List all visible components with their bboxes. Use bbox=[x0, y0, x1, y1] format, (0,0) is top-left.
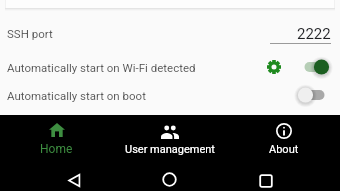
staticText: Home bbox=[40, 142, 73, 156]
button[interactable]: Recent apps bbox=[259, 174, 273, 188]
button[interactable]: About bbox=[227, 115, 340, 160]
staticText: Automatically start on boot bbox=[7, 89, 146, 102]
button[interactable]: Automatically start on boot bbox=[0, 81, 340, 109]
button[interactable]: Back bbox=[68, 174, 81, 187]
button[interactable]: Home bbox=[162, 172, 177, 187]
button[interactable]: Automatically start on Wi-Fi detected bbox=[0, 53, 340, 81]
staticText: SSH port bbox=[7, 27, 53, 40]
staticText: User management bbox=[125, 143, 215, 156]
button[interactable]: Home bbox=[0, 115, 113, 160]
button[interactable]: SSH port bbox=[0, 14, 340, 53]
button[interactable]: Wi-Fi settings bbox=[264, 57, 284, 77]
staticText: Automatically start on Wi-Fi detected bbox=[7, 61, 196, 74]
staticText: About bbox=[269, 143, 299, 156]
staticText: 2222 bbox=[297, 25, 331, 43]
button[interactable]: User management bbox=[113, 115, 226, 160]
